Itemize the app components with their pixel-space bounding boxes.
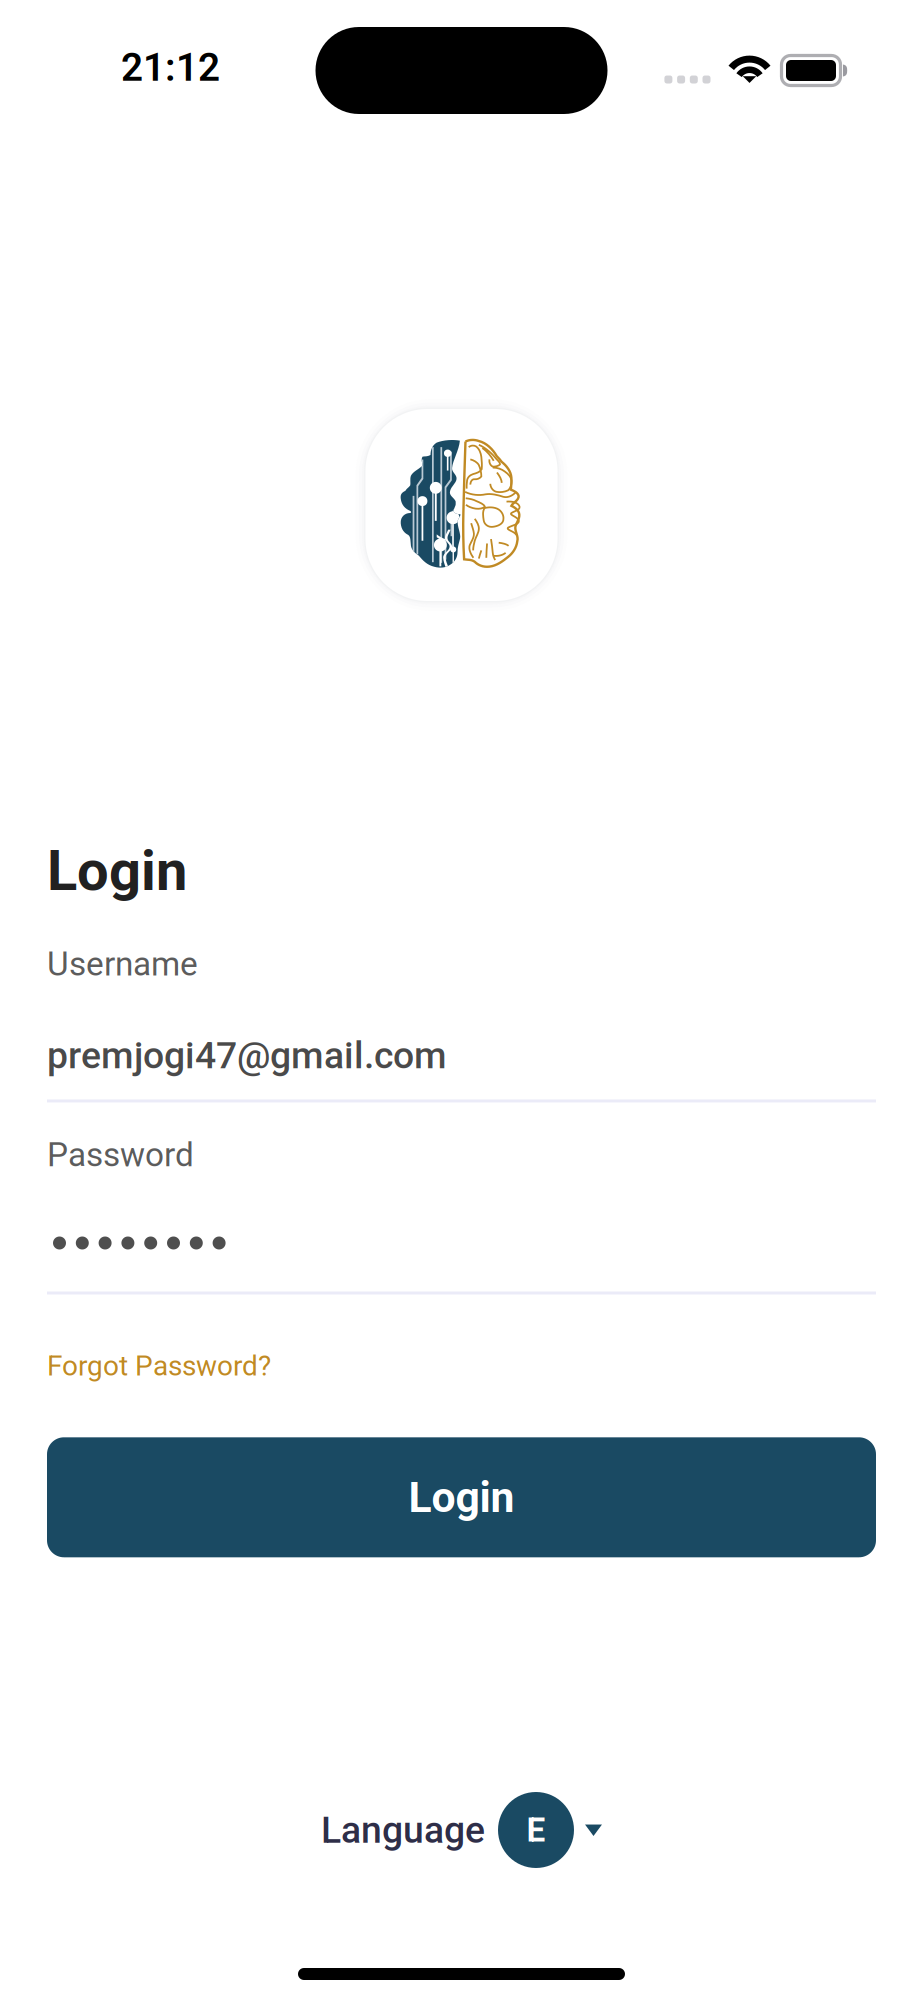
staticText: Login bbox=[408, 1472, 514, 1522]
staticText: Forgot Password? bbox=[47, 1349, 271, 1382]
button[interactable]: Login bbox=[47, 1437, 876, 1557]
staticText: Password bbox=[47, 1135, 194, 1174]
staticText: E bbox=[526, 1810, 545, 1850]
staticText: 21:12 bbox=[121, 45, 220, 90]
staticText: Login bbox=[47, 838, 187, 904]
staticText: Language bbox=[321, 1808, 485, 1852]
staticText: Username bbox=[47, 945, 198, 984]
button[interactable]: Language, English bbox=[321, 1792, 602, 1868]
button[interactable]: Forgot Password? bbox=[47, 1349, 876, 1382]
staticText: premjogi47@gmail.com bbox=[47, 1034, 447, 1077]
